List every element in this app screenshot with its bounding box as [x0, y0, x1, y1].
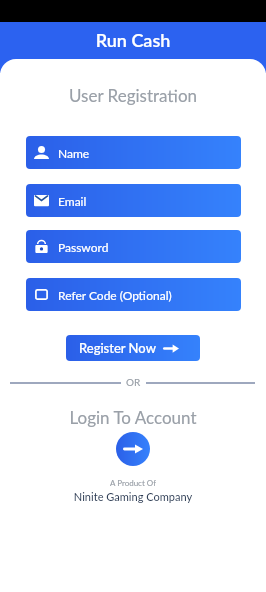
button[interactable]: Password	[26, 230, 241, 263]
staticText: User Registration	[0, 85, 266, 105]
staticText: Refer Code (Optional)	[58, 288, 172, 302]
button[interactable]: Name	[26, 136, 241, 169]
staticText: Ninite Gaming Company	[0, 490, 266, 503]
staticText: Register Now	[79, 340, 156, 356]
staticText: A Product Of	[0, 478, 266, 488]
staticText: Password	[58, 240, 109, 254]
staticText: Run Cash	[0, 29, 266, 51]
staticText: Name	[58, 146, 90, 160]
staticText: OR	[126, 376, 141, 388]
button[interactable]: Email	[26, 184, 241, 217]
button[interactable]: Login	[116, 432, 150, 466]
button[interactable]: Register Now	[66, 335, 200, 361]
button[interactable]: Refer Code (Optional)	[26, 278, 241, 311]
staticText: Email	[58, 194, 87, 208]
staticText: Login To Account	[0, 407, 266, 427]
